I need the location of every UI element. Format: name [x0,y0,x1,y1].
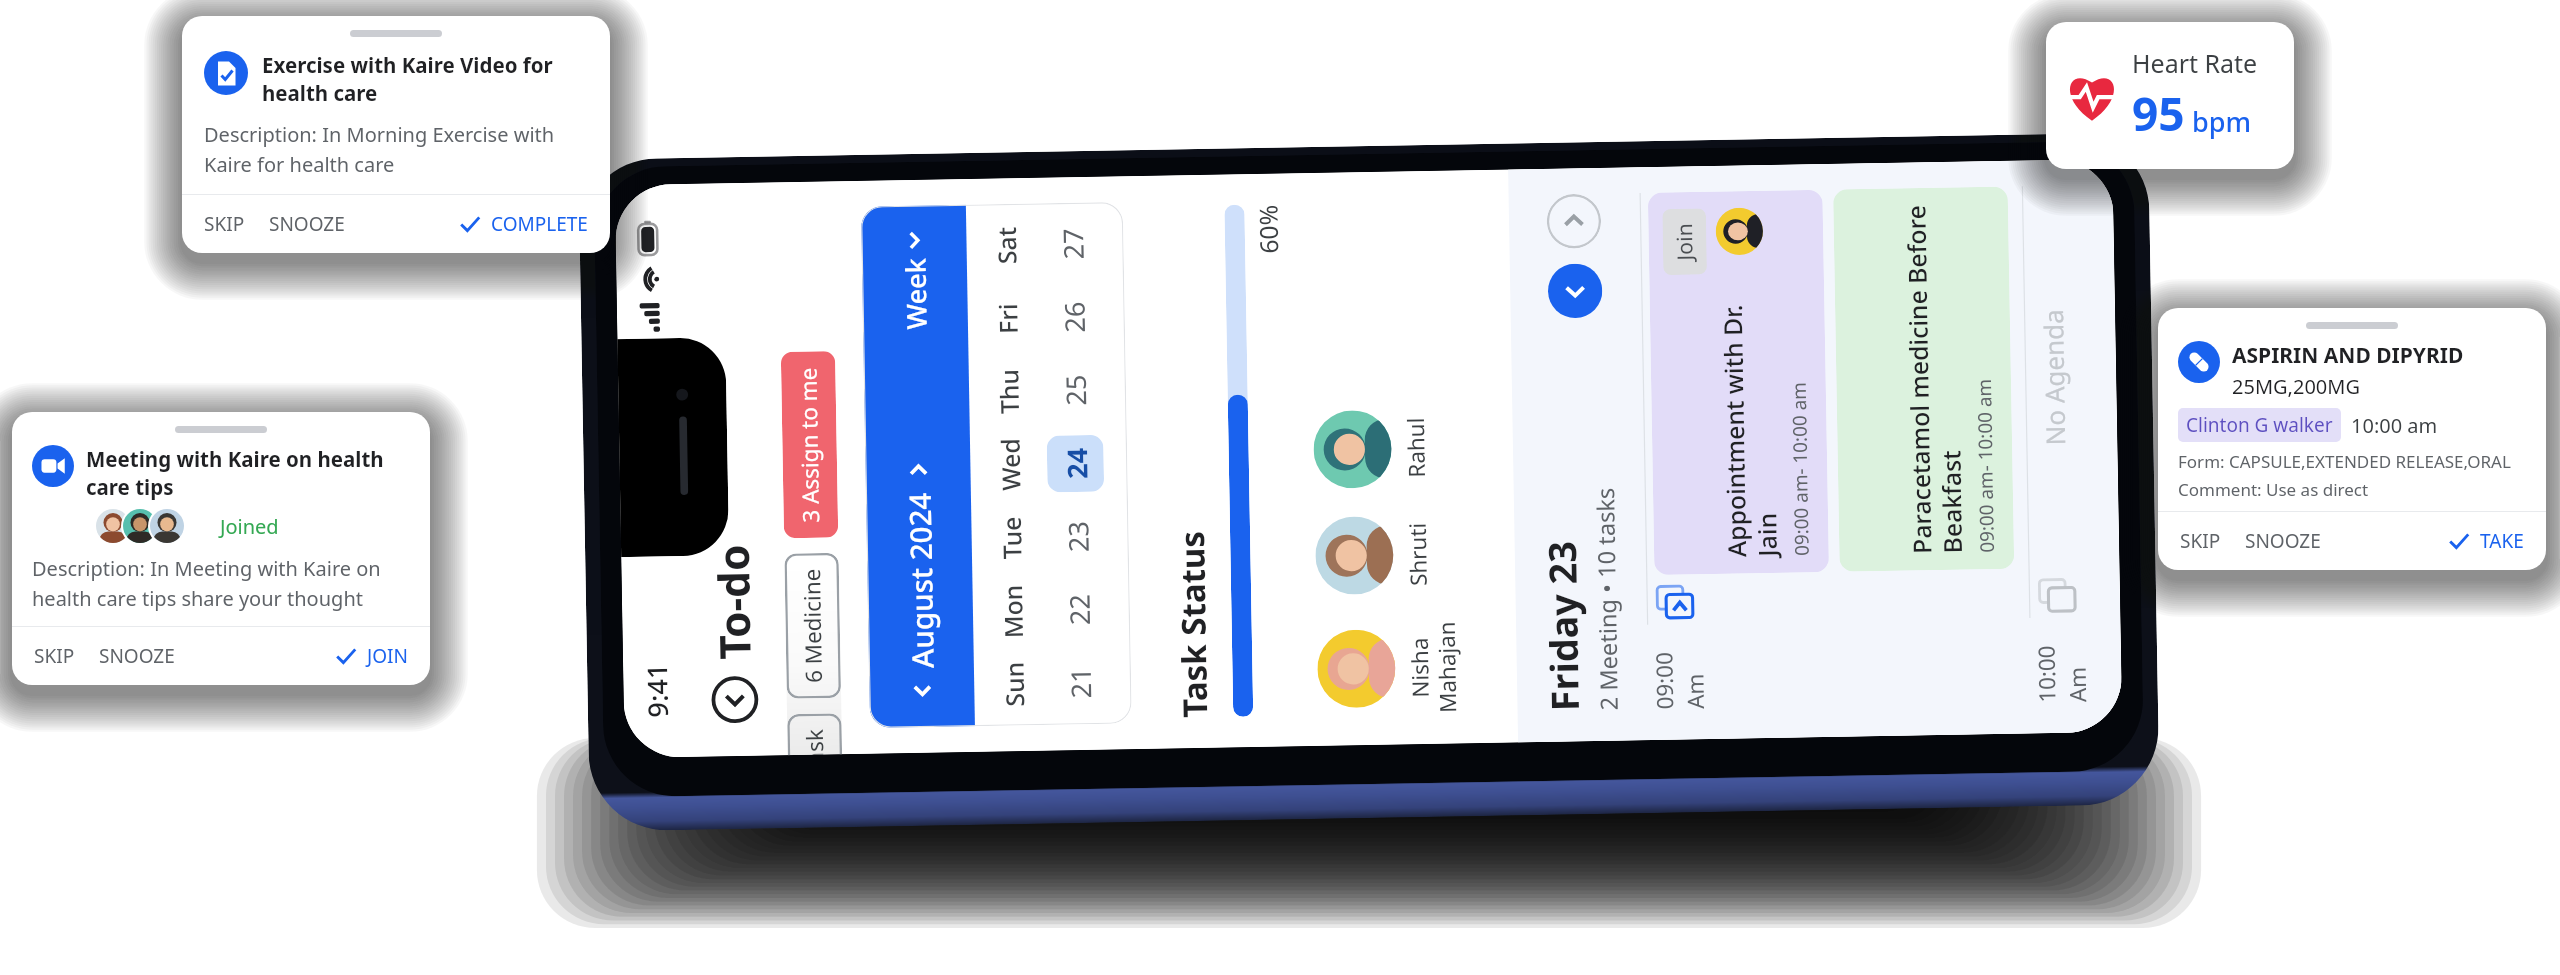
staticText: 9:41 [637,663,675,718]
staticText: SNOOZE [2245,528,2321,554]
staticText: Am [1680,673,1711,709]
staticText: 95 [2132,82,2185,145]
staticText: bpm [2192,103,2252,140]
staticText: Shruti [1402,522,1434,586]
button[interactable]: Week [891,226,939,335]
button[interactable]: Expand [1547,263,1603,318]
button[interactable]: Join [1662,208,1707,275]
staticText: August 2024 [899,492,942,668]
staticText: JOIN [367,643,408,669]
staticText: Rahul [1400,417,1432,478]
staticText: 2 Meeting • 10 tasks [1589,487,1625,711]
button[interactable]: TAKE [2440,520,2532,562]
staticText: 26 [1055,300,1092,333]
staticText: Exercise with Kaire Video for health car… [262,51,590,107]
staticText: Description: In Meeting with Kaire on he… [32,555,416,612]
button[interactable]: Fri [991,280,1102,355]
staticText: 25 [1056,374,1093,406]
staticText: Heart Rate [2132,46,2258,80]
staticText: SNOOZE [269,211,345,237]
button[interactable]: Add task [1655,584,1695,625]
staticText: No Agenda [2034,308,2072,446]
staticText: Clinton G walker [2186,412,2333,438]
button[interactable]: Add task [2037,577,2078,618]
staticText: Sun [997,661,1032,707]
staticText: Am [2062,667,2093,702]
staticText: 21 [1061,666,1098,699]
staticText: ASPIRIN AND DIPYRID [2232,341,2464,370]
staticText: 25MG,200MG [2232,373,2360,400]
staticText: Mon [996,584,1031,638]
staticText: 10:00 [2031,645,2063,703]
staticText: 09:00 am- 10:00 am [1971,378,2000,553]
staticText: Paracetamol medicine Before Beakfast [1899,204,1970,554]
staticText: Thu [992,368,1027,414]
staticText: SNOOZE [99,643,175,669]
button[interactable]: 3 Assign to me [781,351,838,538]
staticText: Fri [991,303,1026,334]
staticText: 27 [1054,227,1091,260]
button[interactable]: Appointment with Dr. Jain [1648,190,1829,575]
staticText: TAKE [2480,528,2524,554]
staticText: Meeting with Kaire on health care tips [86,445,414,501]
button[interactable]: Sun [997,646,1108,721]
button[interactable]: Next month [903,454,934,485]
staticText: Nisha Mahajan [1404,621,1463,714]
staticText: 6 Medicine [796,568,829,683]
button[interactable]: JOIN [327,635,416,677]
staticText: 09:00 [1649,651,1680,710]
button[interactable]: Select date [708,673,761,726]
staticText: Appointment with Dr. Jain [1715,283,1785,557]
staticText: 3 Assign to me [793,366,826,523]
staticText: 3 Task [799,729,830,755]
button[interactable]: Paracetamol medicine Before Beakfast [1833,186,2014,572]
staticText: Wed [993,437,1029,491]
button[interactable]: Previous month [907,675,938,706]
staticText: Tue [995,516,1030,559]
staticText: 24 [1057,447,1094,479]
button[interactable]: Wed [993,427,1104,502]
staticText: Week [896,257,934,330]
button[interactable]: SKIP [26,635,83,677]
button[interactable]: Mon [996,573,1107,648]
staticText: COMPLETE [491,211,588,237]
button[interactable]: SNOOZE [2237,520,2329,562]
staticText: 60% [1251,204,1286,254]
staticText: Comment: Use as direct [2178,478,2369,501]
staticText: Sat [990,226,1025,264]
button[interactable]: Sat [989,207,1100,282]
button[interactable]: COMPLETE [451,203,596,245]
staticText: SKIP [2180,528,2221,554]
button[interactable]: 3 Task [787,713,842,755]
button[interactable]: SNOOZE [91,635,183,677]
staticText: Form: CAPSULE,EXTENDED RELEASE,ORAL [2178,450,2511,473]
button[interactable]: 6 Medicine [784,553,841,699]
staticText: SKIP [34,643,75,669]
staticText: Description: In Morning Exercise with Ka… [204,121,590,178]
staticText: Friday 23 [1536,540,1591,712]
button[interactable]: Tue [995,500,1106,575]
staticText: Task Status [1169,530,1217,718]
button[interactable]: SKIP [196,203,253,245]
staticText: 10:00 am [2351,412,2438,439]
button[interactable]: Collapse [1546,194,1601,249]
staticText: SKIP [204,211,245,237]
staticText: Join [1670,223,1700,261]
staticText: To-do [704,543,764,660]
button[interactable]: SKIP [2172,520,2229,562]
staticText: 23 [1059,520,1096,552]
button[interactable]: Thu [992,353,1103,428]
staticText: Joined [220,513,279,540]
staticText: 09:00 am- 10:00 am [1786,381,1815,556]
staticText: 22 [1060,593,1097,626]
button[interactable]: SNOOZE [261,203,353,245]
